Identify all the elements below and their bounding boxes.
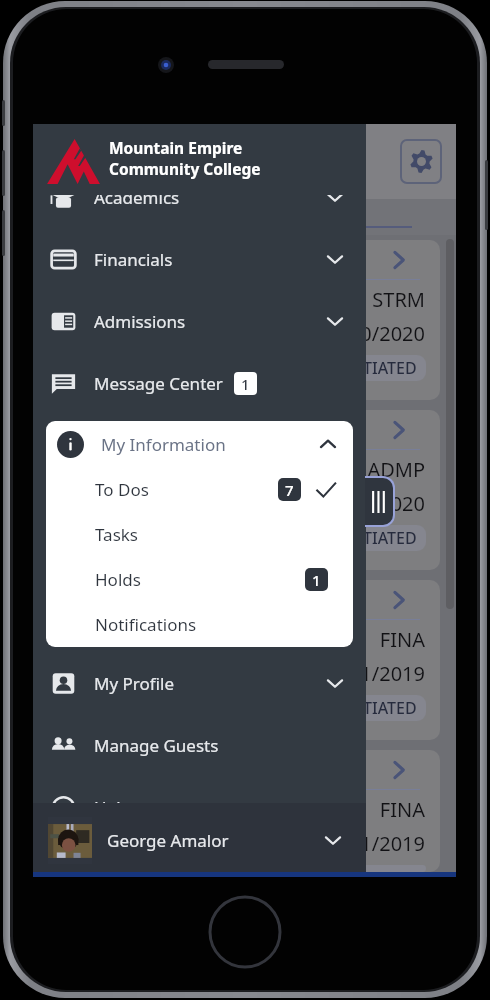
button[interactable]: My Profile bbox=[33, 652, 366, 714]
staticText: Tasks bbox=[95, 523, 138, 546]
button[interactable]: FINA bbox=[53, 750, 440, 872]
button[interactable]: Message Center bbox=[33, 352, 366, 414]
button[interactable]: Manage Guests bbox=[33, 714, 366, 776]
staticText: Financials bbox=[94, 248, 173, 271]
staticText: ADMP bbox=[53, 456, 425, 483]
button[interactable]: Academics bbox=[33, 166, 366, 228]
staticText: Manage Guests bbox=[94, 734, 219, 757]
staticText: 1 bbox=[312, 570, 321, 590]
staticText: 01/2019 bbox=[53, 830, 425, 857]
button[interactable]: Admissions bbox=[33, 290, 366, 352]
staticText: TIATED bbox=[363, 867, 417, 870]
staticText: To Dos bbox=[95, 478, 149, 501]
staticText: Notifications bbox=[95, 613, 197, 636]
button[interactable]: Close menu bbox=[365, 478, 393, 525]
staticText: TIATED bbox=[363, 697, 417, 719]
staticText: Admissions bbox=[94, 310, 186, 333]
button[interactable]: STRM bbox=[53, 240, 440, 400]
staticText: Message Center bbox=[94, 372, 223, 395]
staticText: Academics bbox=[94, 186, 180, 209]
staticText: 7 bbox=[285, 480, 294, 500]
staticText: 01/2019 bbox=[53, 660, 425, 687]
button[interactable]: ADMP bbox=[53, 410, 440, 570]
button[interactable]: Holds bbox=[46, 557, 353, 602]
staticText: STRM bbox=[53, 286, 425, 313]
button[interactable]: Financials bbox=[33, 228, 366, 290]
staticText: FINA bbox=[53, 626, 425, 653]
staticText: Help bbox=[94, 796, 132, 819]
staticText: Holds bbox=[95, 568, 141, 591]
staticText: My Information bbox=[101, 433, 226, 456]
staticText: TIATED bbox=[363, 357, 417, 379]
staticText: 2020 bbox=[53, 490, 425, 517]
staticText: FINA bbox=[53, 796, 425, 823]
button[interactable]: Tasks bbox=[46, 512, 353, 557]
staticText: Mountain Empire bbox=[109, 137, 243, 158]
staticText: George Amalor bbox=[107, 829, 229, 852]
button[interactable]: Settings bbox=[400, 139, 442, 184]
button[interactable]: George Amalor bbox=[33, 803, 366, 877]
button[interactable]: My Information bbox=[46, 421, 353, 467]
staticText: Community College bbox=[109, 158, 261, 179]
staticText: 1 bbox=[241, 374, 250, 394]
staticText: TIATED bbox=[363, 527, 417, 549]
staticText: 10/2020 bbox=[53, 320, 425, 347]
button[interactable]: FINA bbox=[53, 580, 440, 740]
staticText: My Profile bbox=[94, 672, 174, 695]
button[interactable]: To Dos bbox=[46, 467, 353, 512]
button[interactable]: Notifications bbox=[46, 602, 353, 647]
button[interactable]: Help bbox=[33, 776, 366, 838]
